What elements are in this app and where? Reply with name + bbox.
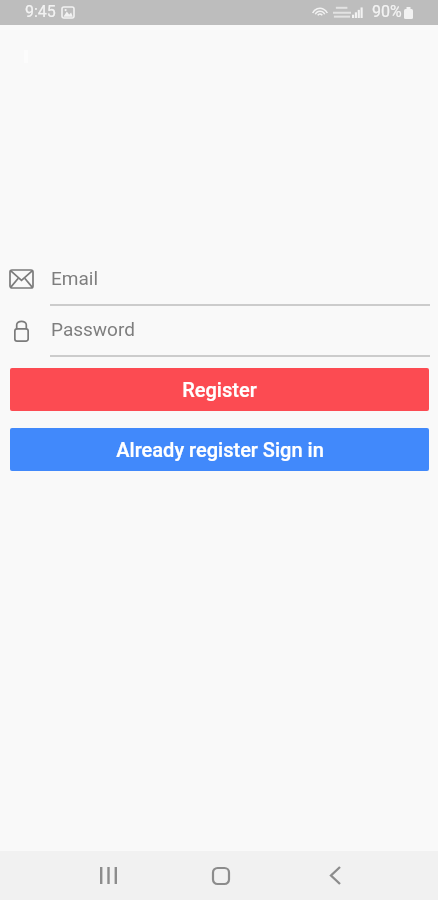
staticText: Already register Sign in (116, 438, 324, 461)
button[interactable]: Already register Sign in (10, 428, 429, 471)
button[interactable]: Back (292, 851, 438, 900)
button[interactable]: Home (146, 851, 292, 900)
staticText: Email (51, 267, 99, 289)
staticText: Password (51, 318, 135, 340)
button[interactable]: Register (10, 368, 429, 411)
staticText: 90% (372, 2, 402, 21)
staticText: 9:45 (25, 2, 56, 21)
button[interactable]: Email (0, 263, 438, 309)
staticText: Register (182, 378, 257, 401)
button[interactable]: Recent apps (0, 851, 146, 900)
button[interactable]: Password (0, 314, 438, 360)
